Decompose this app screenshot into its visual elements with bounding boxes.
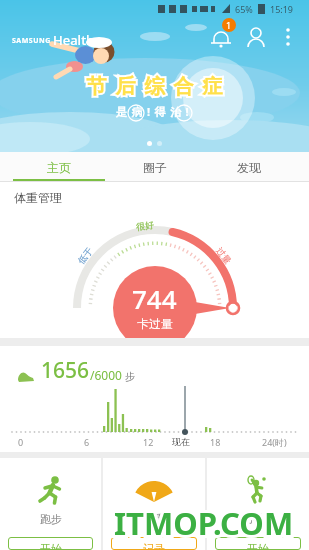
button[interactable]: 羽毛球 bbox=[207, 458, 309, 550]
staticText: 节后综合症 bbox=[82, 74, 227, 99]
staticText: 体重 bbox=[143, 512, 165, 526]
staticText: /6000 bbox=[90, 367, 122, 383]
staticText: Health bbox=[53, 31, 95, 49]
staticText: 12 bbox=[143, 436, 154, 448]
staticText: 24(时) bbox=[262, 436, 287, 448]
button[interactable]: 圈子 bbox=[103, 152, 206, 182]
staticText: 主页 bbox=[47, 160, 71, 175]
staticText: 0 bbox=[18, 436, 24, 448]
staticText: 1 bbox=[226, 19, 232, 31]
staticText: 是病!得治! bbox=[116, 104, 194, 119]
staticText: 15:19 bbox=[270, 3, 294, 15]
staticText: 体重管理 bbox=[14, 190, 62, 205]
button[interactable]: 开始 bbox=[215, 537, 301, 550]
staticText: 发现 bbox=[237, 160, 261, 175]
button[interactable]: 记录 bbox=[111, 537, 197, 550]
button[interactable]: 体重管理 bbox=[0, 182, 309, 338]
staticText: 跑步 bbox=[40, 512, 62, 526]
button[interactable]: 主页 bbox=[0, 152, 103, 182]
staticText: 圈子 bbox=[143, 160, 167, 175]
staticText: 很好 bbox=[135, 219, 155, 232]
staticText: ITMOP.COM bbox=[114, 502, 294, 544]
staticText: 开始 bbox=[40, 542, 62, 550]
staticText: 744 bbox=[132, 281, 177, 316]
button[interactable] bbox=[280, 26, 296, 50]
staticText: 卡过量 bbox=[137, 316, 173, 331]
staticText: 记录 bbox=[143, 542, 165, 550]
button[interactable]: 体重 bbox=[103, 458, 205, 550]
button[interactable] bbox=[244, 26, 268, 50]
staticText: 18 bbox=[210, 436, 221, 448]
staticText: 节后综合症 bbox=[82, 74, 227, 99]
button[interactable]: 1656 bbox=[0, 346, 309, 452]
staticText: 6 bbox=[84, 436, 90, 448]
staticText: 开始 bbox=[247, 542, 269, 550]
staticText: 65% bbox=[235, 3, 253, 15]
button[interactable]: 跑步 bbox=[0, 458, 101, 550]
button[interactable]: 1 bbox=[208, 24, 238, 54]
staticText: 过量 bbox=[214, 245, 234, 266]
button[interactable]: 开始 bbox=[8, 537, 93, 550]
staticText: 羽毛球 bbox=[242, 512, 275, 526]
staticText: SAMSUNG bbox=[12, 36, 51, 46]
staticText: 现在 bbox=[172, 436, 190, 447]
staticText: 1656 bbox=[41, 356, 90, 385]
staticText: ITMOP.COM bbox=[114, 502, 294, 544]
button[interactable]: 发现 bbox=[206, 152, 309, 182]
staticText: 低于 bbox=[75, 245, 95, 266]
staticText: 步 bbox=[125, 370, 135, 383]
